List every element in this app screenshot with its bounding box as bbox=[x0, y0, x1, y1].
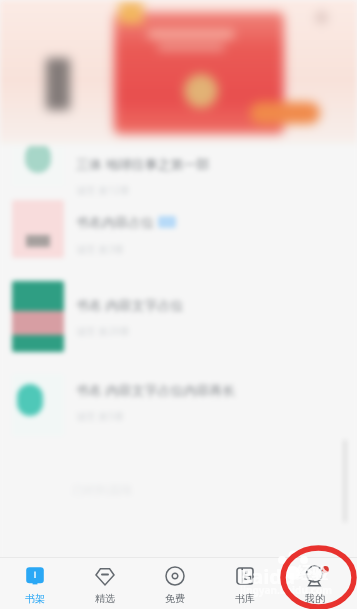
button[interactable] bbox=[0, 108, 357, 194]
button[interactable]: Free bbox=[140, 558, 210, 609]
staticText: 书名 内容文字占位 bbox=[76, 296, 184, 314]
button[interactable]: Bookshelf bbox=[0, 558, 70, 609]
staticText: 书架 bbox=[25, 592, 45, 605]
staticText: 我的 bbox=[305, 592, 325, 605]
staticText: Baidu bbox=[238, 563, 295, 590]
button[interactable] bbox=[0, 194, 357, 280]
staticText: 经验 bbox=[296, 564, 328, 584]
staticText: 书库 bbox=[235, 592, 255, 605]
staticText: 书名内容占位 bbox=[76, 214, 154, 230]
staticText: 精选 bbox=[95, 592, 115, 605]
button[interactable] bbox=[0, 272, 357, 358]
button[interactable] bbox=[0, 366, 357, 452]
button[interactable]: Library bbox=[210, 558, 280, 609]
staticText: 免费 bbox=[165, 592, 185, 605]
staticText: 三体 地球往事之第一部 bbox=[76, 155, 210, 173]
button[interactable]: Featured bbox=[70, 558, 140, 609]
button[interactable]: Mine bbox=[280, 558, 350, 609]
staticText: 书名 内容文字占位内容再长 bbox=[76, 381, 236, 399]
staticText: jingyan.baidu.com bbox=[240, 583, 332, 597]
